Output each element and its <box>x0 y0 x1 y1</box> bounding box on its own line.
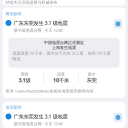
staticText: 上海发生地震 <box>52 45 76 50</box>
staticText: 3.1级 <box>18 77 30 84</box>
button[interactable]: 腾讯新闻 <box>2 7 125 98</box>
staticText: 澎湃新闻 <box>5 105 21 110</box>
staticText: 深度 <box>57 72 65 77</box>
staticText: 广东东莞发生 3.1 级地震 <box>13 113 67 120</box>
staticText: 附近。 <box>12 56 24 61</box>
staticText: 震级 <box>20 72 28 77</box>
staticText: 10千米 <box>53 77 69 84</box>
button[interactable]: 持续关注后续进展与权威发布 <box>2 0 125 5</box>
staticText: 震源深度 10 千米，震中位于北纬 31.2 度，东经 121.5 度 <box>12 51 110 56</box>
staticText: 中国地震台网正式测定 <box>44 40 84 45</box>
staticText: 腾讯新闻 <box>5 11 21 16</box>
staticText: 据中国地震台网 · 今天 12:40 <box>13 27 62 33</box>
staticText: 持续关注后续进展与权威发布 <box>5 0 57 5</box>
staticText: 据中国地震台网 · 今天 12:40 <box>13 121 62 126</box>
staticText: 广东东莞发生 3.1 级地震 <box>13 19 67 26</box>
staticText: 震中 <box>87 72 95 77</box>
staticText: 东莞 <box>86 77 96 84</box>
button[interactable]: 澎湃新闻 <box>2 101 125 128</box>
staticText: 查询 15045390250908540 条相关地震资讯推荐内容 <box>5 88 93 94</box>
